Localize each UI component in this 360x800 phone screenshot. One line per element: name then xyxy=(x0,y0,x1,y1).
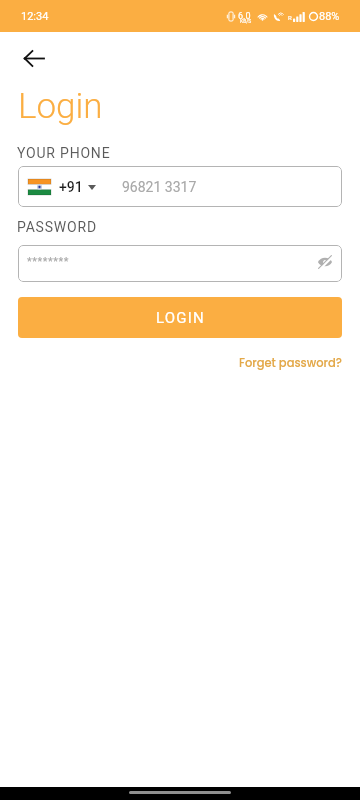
staticText: 12:34 xyxy=(21,10,49,23)
staticText: YOUR PHONE xyxy=(17,145,111,161)
staticText: PASSWORD xyxy=(17,219,97,235)
button[interactable]: Show password xyxy=(313,250,337,274)
staticText: * * * * * * * * xyxy=(27,255,68,268)
button[interactable]: +91 xyxy=(28,179,96,195)
staticText: LOGIN xyxy=(156,309,205,327)
staticText: Login xyxy=(18,86,103,127)
staticText: +91 xyxy=(59,179,83,195)
staticText: 6.00 xyxy=(238,11,254,23)
button[interactable]: LOGIN xyxy=(18,297,342,338)
staticText: 88% xyxy=(319,10,340,23)
staticText: R xyxy=(288,14,292,21)
button[interactable]: Forget password? xyxy=(239,355,342,371)
staticText: KB/S xyxy=(240,18,252,24)
button[interactable]: Back xyxy=(14,38,54,78)
staticText: 96821 3317 xyxy=(122,179,197,195)
